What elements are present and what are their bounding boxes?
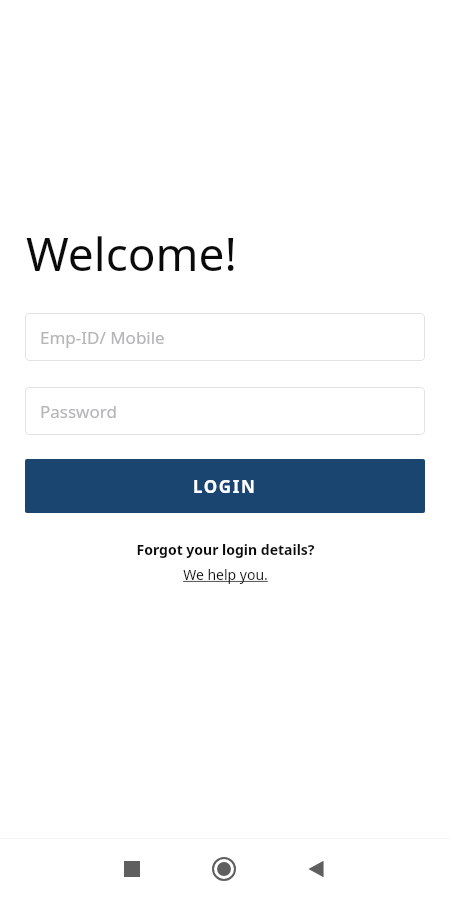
- staticText: LOGIN: [193, 475, 257, 498]
- staticText: Forgot your login details?: [136, 540, 315, 559]
- button[interactable]: Home: [202, 847, 246, 891]
- button[interactable]: We help you.: [183, 565, 268, 584]
- button[interactable]: Recent apps: [110, 847, 154, 891]
- staticText: Welcome!: [26, 222, 237, 285]
- button[interactable]: Password: [25, 387, 425, 435]
- staticText: Password: [40, 400, 117, 423]
- button[interactable]: LOGIN: [25, 459, 425, 513]
- button[interactable]: Back: [294, 847, 338, 891]
- staticText: We help you.: [183, 565, 268, 584]
- staticText: Emp-ID/ Mobile: [40, 326, 165, 349]
- button[interactable]: Emp-ID/ Mobile: [25, 313, 425, 361]
